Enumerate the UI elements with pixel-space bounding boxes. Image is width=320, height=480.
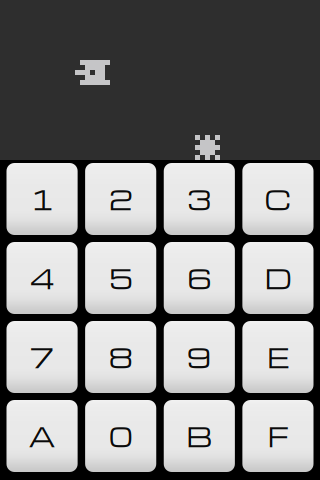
staticText: 6 — [187, 260, 211, 296]
button[interactable]: E — [242, 321, 313, 393]
staticText: 2 — [109, 181, 133, 217]
staticText: E — [267, 339, 289, 375]
staticText: 3 — [187, 181, 211, 217]
staticText: C — [264, 181, 291, 217]
staticText: 4 — [30, 260, 55, 296]
staticText: 0 — [109, 418, 133, 454]
button[interactable]: 2 — [85, 163, 156, 235]
button[interactable]: 3 — [164, 163, 235, 235]
button[interactable]: D — [242, 242, 313, 314]
staticText: 9 — [187, 339, 212, 375]
button[interactable]: 1 — [6, 163, 78, 235]
button[interactable]: 5 — [85, 242, 156, 314]
staticText: B — [186, 418, 212, 454]
button[interactable]: 4 — [6, 242, 78, 314]
button[interactable]: B — [164, 400, 235, 472]
button[interactable]: A — [6, 400, 78, 472]
staticText: D — [264, 260, 291, 296]
button[interactable]: 7 — [6, 321, 78, 393]
staticText: 1 — [30, 181, 54, 217]
button[interactable]: 6 — [164, 242, 235, 314]
staticText: A — [29, 418, 56, 454]
button[interactable]: 9 — [164, 321, 235, 393]
button[interactable]: C — [242, 163, 313, 235]
button[interactable]: 0 — [85, 400, 156, 472]
button[interactable]: F — [242, 400, 313, 472]
staticText: 8 — [109, 339, 133, 375]
staticText: 7 — [30, 339, 55, 375]
staticText: 5 — [109, 260, 133, 296]
staticText: F — [267, 418, 288, 454]
button[interactable]: 8 — [85, 321, 156, 393]
